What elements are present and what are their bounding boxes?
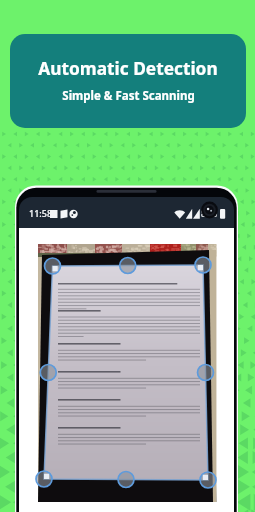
button[interactable]: Automatic Detection [10,34,246,128]
staticText: Simple & Fast Scanning [62,88,195,104]
staticText: 11:58 [29,207,53,219]
staticText: Automatic Detection [38,57,218,81]
staticText: 85% [201,208,217,219]
